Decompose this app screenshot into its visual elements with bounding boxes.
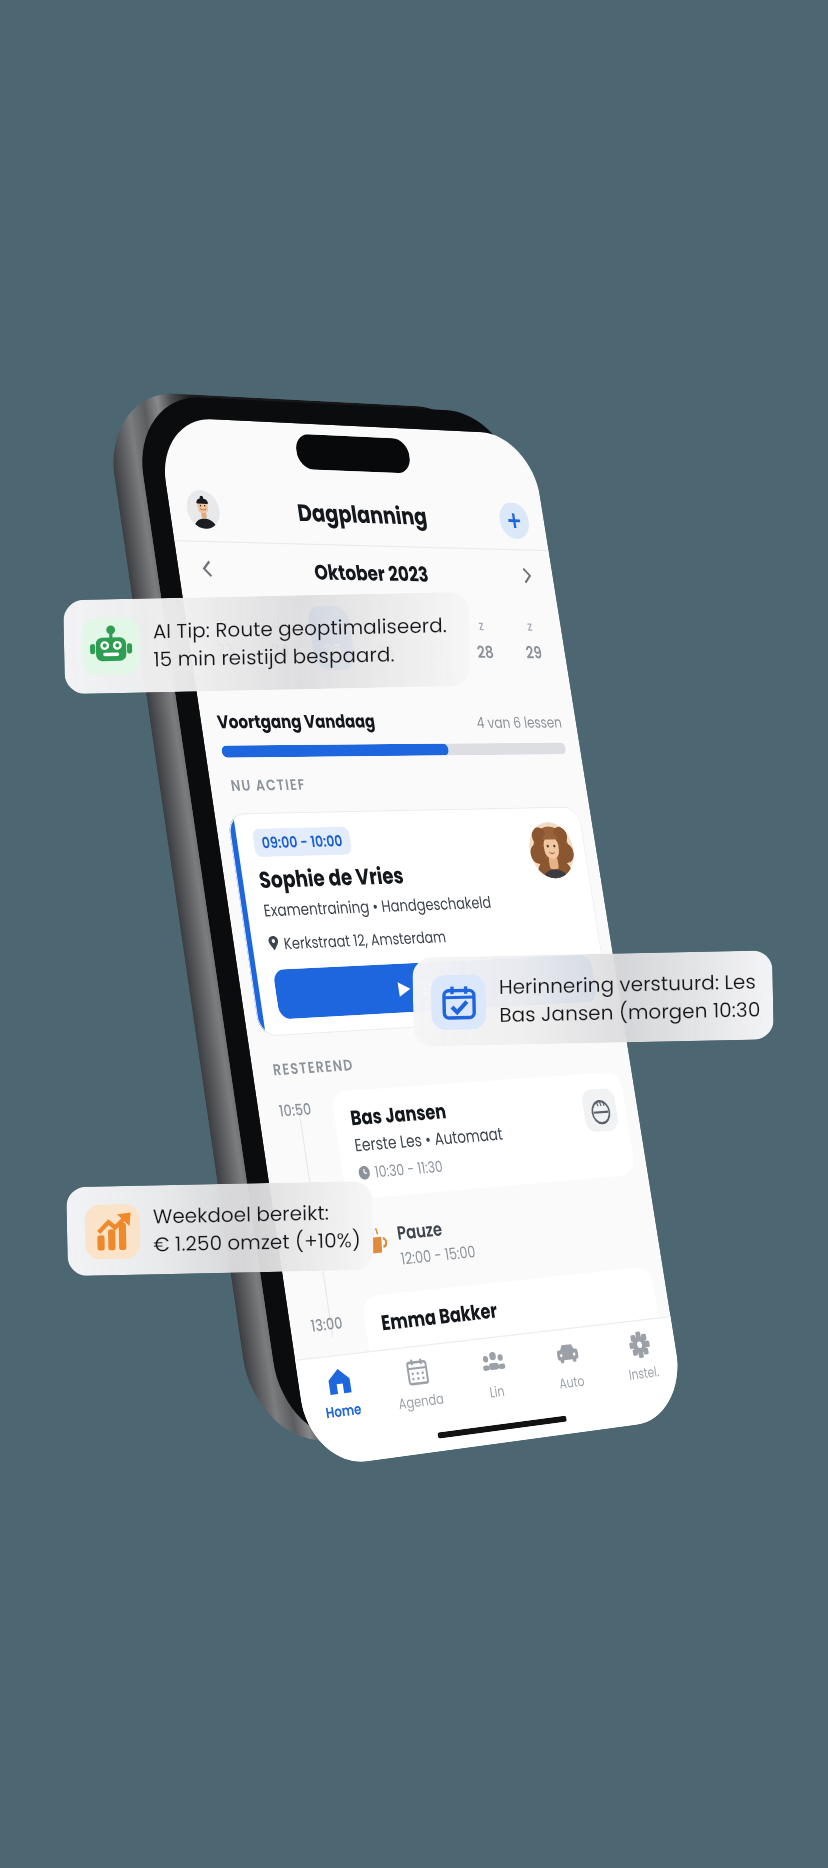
button[interactable]: z [502, 606, 561, 673]
staticText: w [323, 614, 336, 633]
button[interactable]: Volgende maand [512, 559, 543, 592]
button[interactable]: v [403, 605, 464, 673]
staticText: 25 [323, 639, 344, 663]
staticText: 09:00 - 10:00 [260, 830, 344, 853]
button[interactable]: Agenda [374, 1343, 462, 1425]
staticText: Agenda [397, 1388, 446, 1414]
staticText: Auto [558, 1371, 586, 1394]
staticText: Kerkstraat 12, Amsterdam [282, 925, 447, 954]
staticText: 29 [524, 641, 544, 664]
staticText: Oktober 2023 [176, 555, 555, 592]
staticText: AI Tip: Route geoptimaliseerd. [152, 611, 448, 645]
staticText: Emma Bakker [379, 1296, 500, 1338]
button[interactable]: z [453, 605, 513, 673]
button[interactable]: Home [295, 1352, 385, 1435]
staticText: Examentraining • Handgeschakeld [262, 891, 493, 923]
staticText: Bas Jansen (morgen 10:30) [499, 995, 761, 1029]
staticText: 28 [475, 640, 496, 664]
staticText: Lin [488, 1381, 507, 1402]
button[interactable]: Auto [527, 1326, 611, 1405]
staticText: Voortgang Vandaag [215, 708, 377, 734]
staticText: 24 [269, 638, 291, 663]
button[interactable]: Nieuwe les toevoegen [497, 502, 531, 539]
button[interactable]: Emma Bakker [361, 1266, 666, 1398]
button[interactable]: Lin [451, 1334, 538, 1415]
staticText: d [271, 613, 281, 633]
staticText: m [214, 612, 229, 632]
button[interactable]: m [191, 601, 257, 672]
staticText: 4 van 6 lessen [200, 711, 563, 734]
staticText: 10:50 [277, 1098, 313, 1122]
button[interactable]: Vorige maand [190, 551, 224, 586]
staticText: Dagplanning [167, 491, 546, 536]
staticText: 13:00 [309, 1312, 344, 1337]
staticText: Pauze [395, 1216, 444, 1246]
button[interactable]: Weekdoel melding [66, 1181, 374, 1276]
staticText: Start Les [417, 972, 483, 1001]
staticText: RESTEREND [271, 1054, 355, 1080]
button[interactable]: d [352, 604, 414, 673]
staticText: 15 min reistijd bespaard. [153, 640, 395, 673]
button[interactable]: Start Les [272, 955, 598, 1019]
staticText: Weekdoel bereikt: [152, 1199, 330, 1230]
button[interactable]: AI Tip melding [63, 592, 471, 694]
staticText: Herinnering verstuurd: Les [498, 968, 757, 1001]
button[interactable]: Instel. [600, 1317, 682, 1396]
button[interactable]: Bas Jansen [330, 1072, 636, 1200]
staticText: d [376, 615, 387, 634]
staticText: Bas Jansen [348, 1097, 449, 1133]
button[interactable]: w [300, 603, 363, 673]
staticText: NU ACTIEF [229, 774, 308, 796]
button[interactable]: d [246, 602, 310, 672]
staticText: 12:00 - 15:00 [399, 1240, 477, 1270]
staticText: 10:30 - 11:30 [373, 1156, 445, 1182]
button[interactable]: Herinnering melding [412, 950, 774, 1047]
staticText: € 1.250 omzet (+10%) [153, 1226, 361, 1258]
staticText: Instel. [627, 1362, 660, 1385]
staticText: 26 [375, 639, 396, 663]
button[interactable]: Profiel [184, 490, 222, 529]
staticText: z [526, 617, 534, 635]
staticText: Eerste Les • Automaat [353, 1121, 505, 1158]
staticText: z [477, 616, 486, 635]
staticText: Sophie de Vries [257, 860, 406, 897]
staticText: Home [324, 1399, 363, 1423]
button[interactable]: 09:00 - 10:00 [227, 806, 612, 1037]
staticText: 23 [215, 638, 237, 662]
staticText: v [428, 615, 437, 634]
